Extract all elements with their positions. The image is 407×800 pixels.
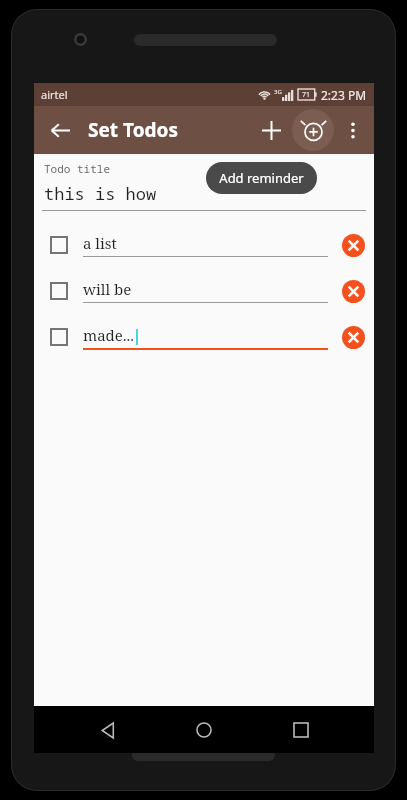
button[interactable]: Toggle made...: [46, 324, 72, 350]
button[interactable]: Add todo: [250, 109, 292, 151]
staticText: 2:23 PM: [321, 87, 367, 103]
button[interactable]: Recent apps: [278, 707, 324, 753]
button[interactable]: Home: [181, 707, 227, 753]
button[interactable]: More options: [334, 111, 372, 149]
button[interactable]: Delete made...: [338, 322, 368, 352]
button[interactable]: Toggle will be: [46, 278, 72, 304]
staticText: Add reminder: [219, 169, 304, 187]
button[interactable]: Back: [85, 707, 131, 753]
staticText: airtel: [41, 87, 68, 102]
staticText: Set Todos: [88, 117, 178, 143]
button[interactable]: Add reminder: [206, 162, 317, 194]
button[interactable]: Toggle a list: [46, 232, 72, 258]
button[interactable]: Toggle made...: [34, 322, 374, 352]
staticText: this is how: [44, 182, 157, 205]
staticText: will be: [83, 279, 132, 299]
button[interactable]: Delete a list: [338, 230, 368, 260]
button[interactable]: Delete will be: [338, 276, 368, 306]
button[interactable]: Navigate up: [38, 108, 82, 152]
button[interactable]: Add reminder: [292, 109, 334, 151]
button[interactable]: Toggle a list: [34, 230, 374, 260]
staticText: made...: [83, 325, 135, 345]
staticText: Todo title: [44, 161, 110, 176]
staticText: 3G: [274, 88, 282, 96]
staticText: a list: [83, 233, 117, 253]
staticText: 71: [302, 90, 311, 100]
button[interactable]: Toggle will be: [34, 276, 374, 306]
